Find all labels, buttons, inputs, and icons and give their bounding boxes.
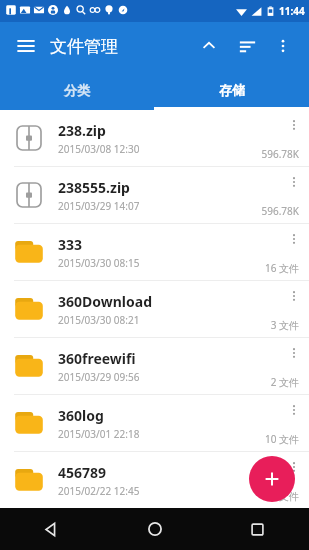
staticText: 333 xyxy=(58,235,83,254)
button[interactable]: 456789 xyxy=(0,452,309,508)
staticText: 596.78K xyxy=(261,147,299,161)
button[interactable]: 360Download xyxy=(0,281,309,337)
staticText: 10 文件 xyxy=(264,432,299,446)
staticText: 存储 xyxy=(219,82,245,98)
button[interactable]: 238555.zip xyxy=(0,167,309,223)
staticText: 分类 xyxy=(64,82,90,98)
button[interactable]: Item options xyxy=(283,399,305,421)
staticText: 2015/03/30 08:15 xyxy=(58,256,140,270)
staticText: 2015/03/29 14:07 xyxy=(58,199,140,213)
button[interactable]: Collapse xyxy=(193,30,225,62)
staticText: 2015/03/08 12:30 xyxy=(58,142,140,156)
staticText: 2015/03/30 08:21 xyxy=(58,313,140,327)
staticText: 2015/03/29 09:56 xyxy=(58,370,140,384)
staticText: 596.78K xyxy=(261,204,299,218)
button[interactable]: Add xyxy=(249,456,295,502)
staticText: 3 文件 xyxy=(270,318,299,332)
button[interactable]: Item options xyxy=(283,228,305,250)
button[interactable]: Item options xyxy=(283,456,305,478)
button[interactable]: Home xyxy=(103,508,206,550)
staticText: 360Download xyxy=(58,292,152,311)
button[interactable]: Item options xyxy=(283,285,305,307)
button[interactable]: 分类 xyxy=(0,70,154,110)
staticText: 360log xyxy=(58,406,104,425)
button[interactable]: Item options xyxy=(283,342,305,364)
staticText: 11:44 xyxy=(279,4,305,18)
staticText: 1 文件 xyxy=(270,489,299,503)
button[interactable]: Back xyxy=(0,508,103,550)
staticText: 238555.zip xyxy=(58,178,130,197)
button[interactable]: More options xyxy=(267,30,299,62)
button[interactable]: Sort xyxy=(231,30,263,62)
button[interactable]: Menu xyxy=(10,30,42,62)
button[interactable]: 存储 xyxy=(154,70,309,110)
button[interactable]: 238.zip xyxy=(0,110,309,166)
button[interactable]: Recents xyxy=(206,508,309,550)
button[interactable]: 360freewifi xyxy=(0,338,309,394)
button[interactable]: 333 xyxy=(0,224,309,280)
button[interactable]: Item options xyxy=(283,171,305,193)
staticText: 16 文件 xyxy=(264,261,299,275)
staticText: 238.zip xyxy=(58,121,106,140)
staticText: 360freewifi xyxy=(58,349,136,368)
staticText: 文件管理 xyxy=(50,36,118,57)
staticText: 456789 xyxy=(58,463,107,482)
staticText: 2015/03/01 22:18 xyxy=(58,427,140,441)
button[interactable]: Item options xyxy=(283,114,305,136)
staticText: 2015/02/22 12:45 xyxy=(58,484,140,498)
staticText: 2 文件 xyxy=(270,375,299,389)
button[interactable]: 360log xyxy=(0,395,309,451)
